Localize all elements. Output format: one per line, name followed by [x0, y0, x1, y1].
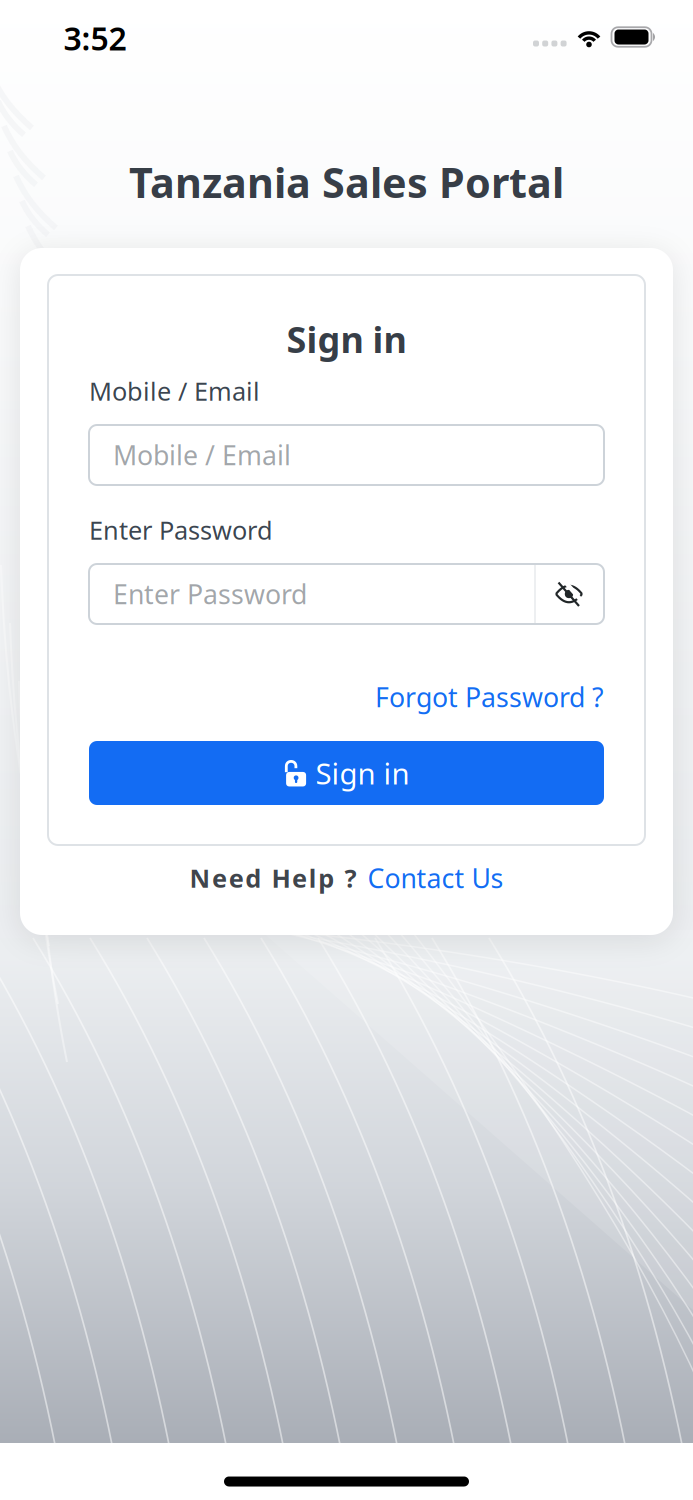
- staticText: Enter Password: [113, 576, 307, 612]
- staticText: Tanzania Sales Portal: [129, 155, 564, 209]
- staticText: Mobile / Email: [113, 437, 291, 473]
- button[interactable]: [535, 565, 603, 623]
- staticText: Sign in: [286, 315, 406, 363]
- button[interactable]: Enter Password: [89, 564, 604, 624]
- staticText: Sign in: [315, 753, 409, 792]
- staticText: Enter Password: [89, 513, 273, 547]
- button[interactable]: Forgot Password ?: [375, 679, 604, 715]
- button[interactable]: Mobile / Email: [89, 425, 604, 485]
- staticText: Mobile / Email: [89, 374, 260, 408]
- staticText: Contact Us: [367, 860, 503, 896]
- button[interactable]: Sign in: [89, 741, 604, 805]
- staticText: Need Help ?: [189, 861, 356, 895]
- staticText: Forgot Password ?: [375, 679, 604, 715]
- button[interactable]: Contact Us: [367, 860, 503, 896]
- staticText: 3:52: [63, 17, 126, 59]
